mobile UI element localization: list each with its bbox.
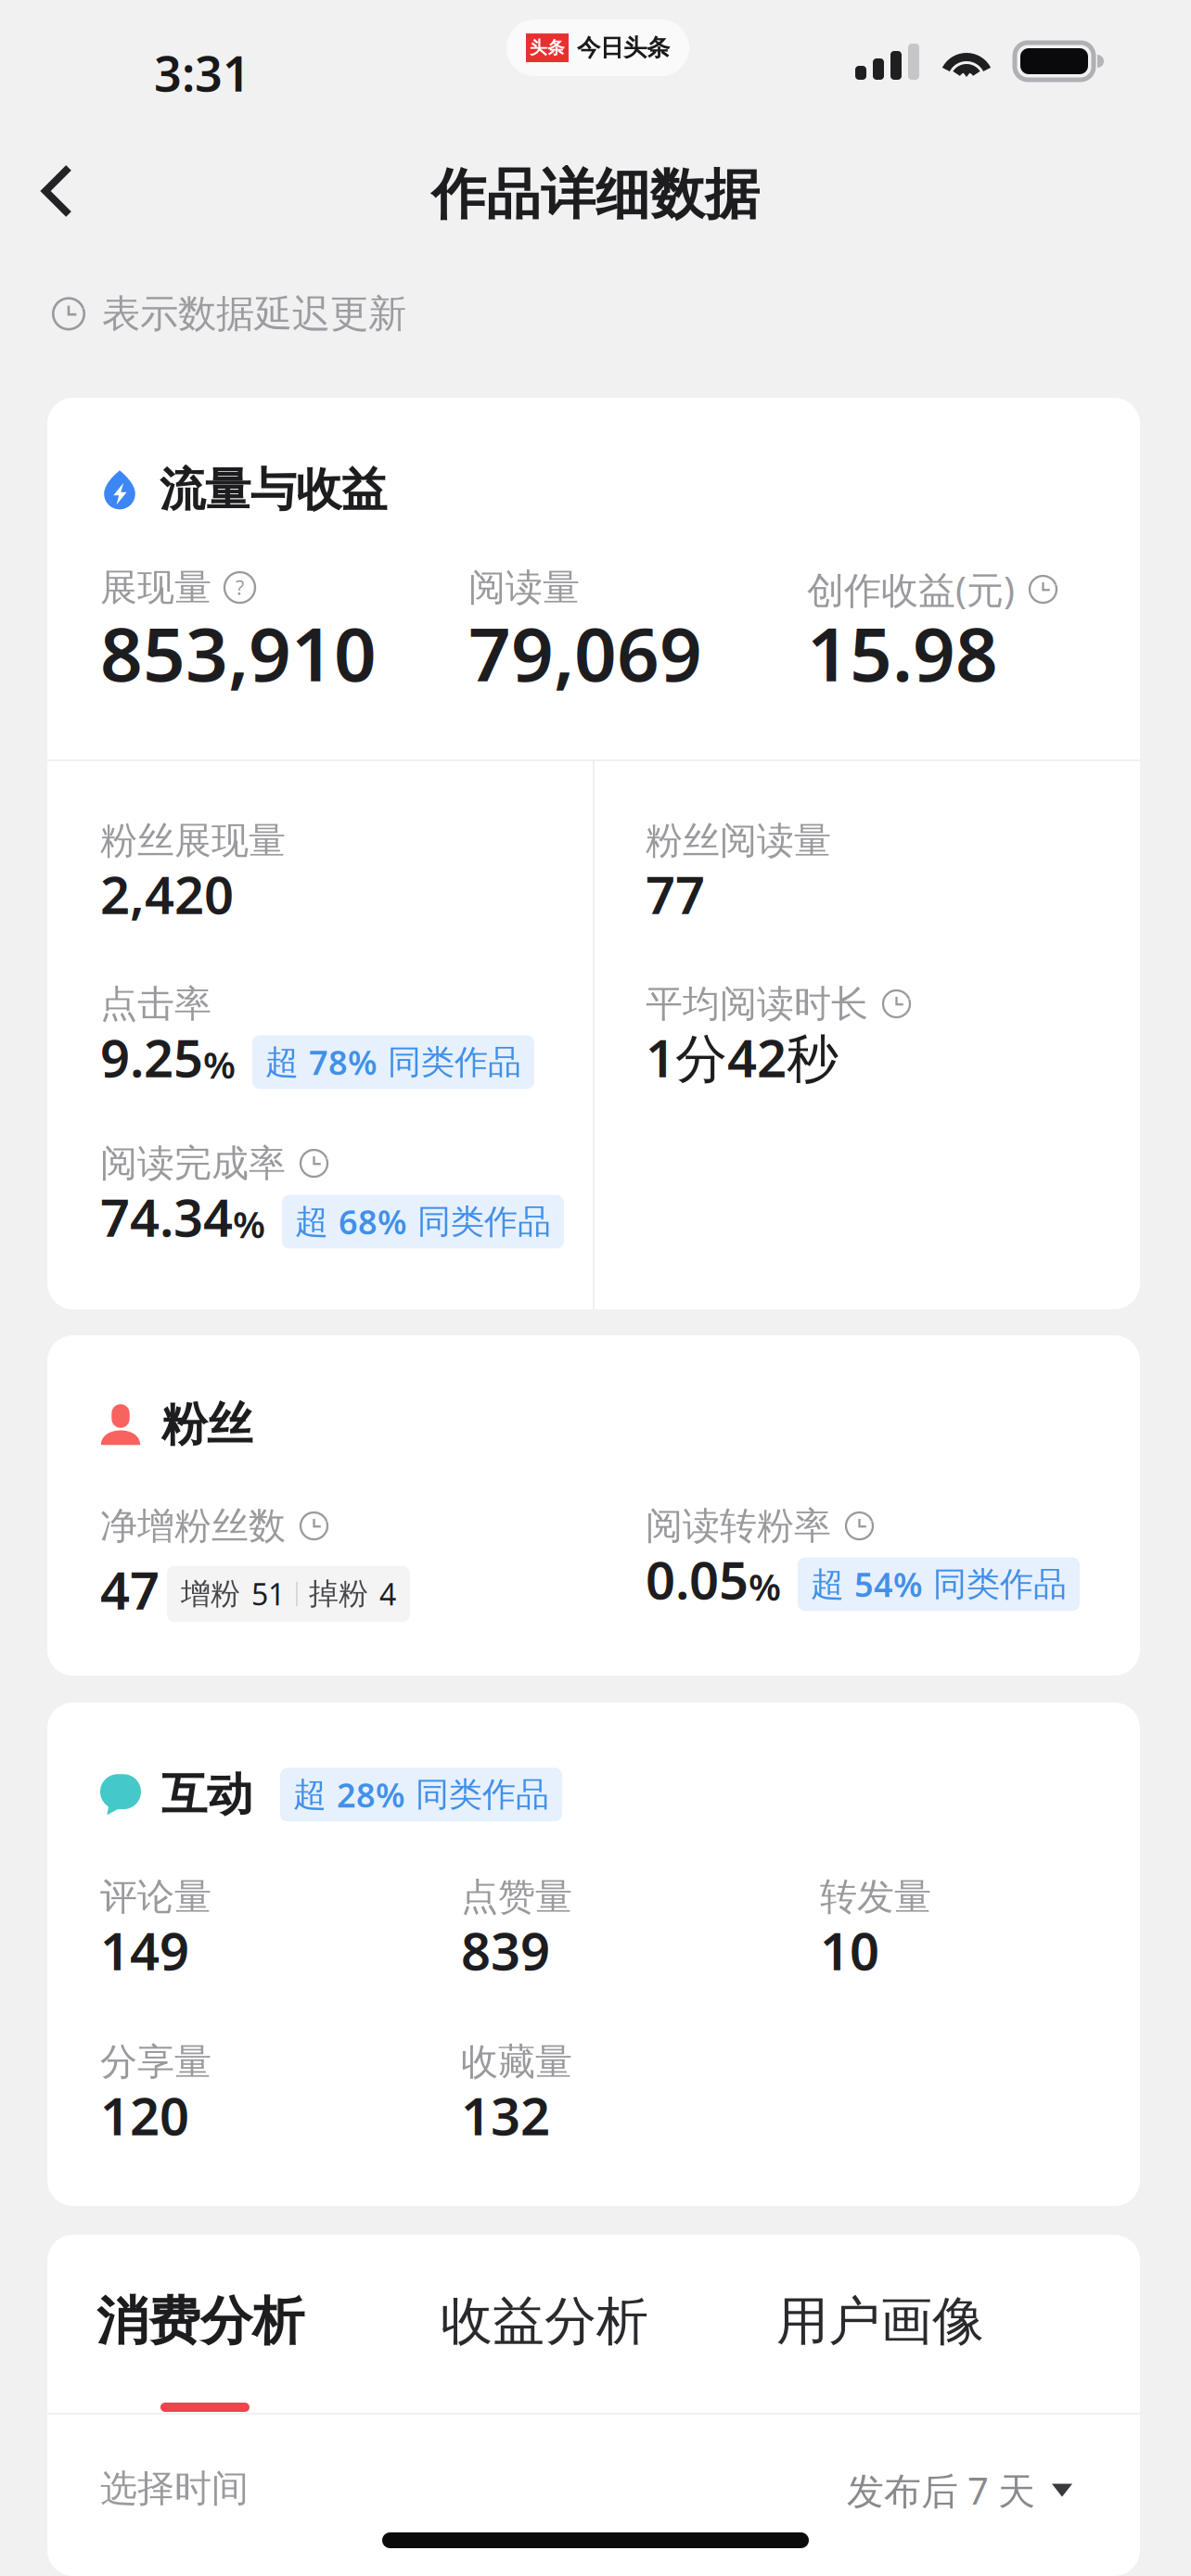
staticText: %: [233, 1199, 265, 1248]
staticText: 收藏量: [461, 2039, 572, 2085]
staticText: 表示数据延迟更新: [102, 290, 406, 337]
button[interactable]: 用户画像: [760, 2265, 1001, 2377]
staticText: 发布后 7 天: [847, 2466, 1035, 2515]
button[interactable]: Back: [17, 138, 98, 244]
staticText: 作品详细数据: [431, 161, 760, 228]
staticText: 132: [461, 2081, 550, 2150]
staticText: 用户画像: [776, 2289, 984, 2353]
staticText: 分享量: [100, 2039, 211, 2085]
staticText: 79,069: [468, 603, 702, 702]
staticText: 流量与收益: [160, 462, 387, 518]
staticText: 超: [265, 1042, 309, 1083]
staticText: 阅读量: [468, 565, 580, 610]
staticText: 28%: [337, 1772, 405, 1817]
staticText: 转发量: [820, 1874, 931, 1920]
staticText: 同类作品: [378, 1042, 521, 1083]
staticText: 增粉: [181, 1576, 240, 1612]
staticText: 评论量: [100, 1874, 211, 1920]
staticText: 平均阅读时长: [646, 981, 868, 1027]
staticText: 今日头条: [577, 33, 670, 62]
staticText: 853,910: [100, 603, 377, 702]
staticText: 4: [379, 1574, 396, 1614]
staticText: 78%: [309, 1040, 378, 1084]
button[interactable]: 发布后 7 天: [847, 2466, 1072, 2515]
staticText: 51: [251, 1574, 285, 1614]
staticText: 阅读转粉率: [646, 1503, 831, 1549]
staticText: 15.98: [807, 603, 998, 702]
staticText: 粉丝: [161, 1396, 252, 1453]
button[interactable]: 收益分析: [424, 2265, 665, 2377]
staticText: 10: [820, 1916, 879, 1985]
staticText: 消费分析: [96, 2289, 304, 2353]
staticText: 2,420: [100, 860, 234, 928]
staticText: 粉丝展现量: [100, 818, 286, 863]
staticText: 3:31: [154, 41, 250, 105]
staticText: 创作收益(元): [807, 565, 1015, 614]
staticText: 掉粉: [309, 1576, 368, 1612]
staticText: 互动: [161, 1766, 252, 1823]
staticText: 同类作品: [407, 1201, 551, 1242]
staticText: 超: [295, 1201, 339, 1242]
staticText: 超: [811, 1564, 854, 1605]
staticText: 同类作品: [405, 1774, 549, 1815]
staticText: 74.34: [100, 1182, 233, 1251]
staticText: 展现量: [100, 565, 211, 610]
staticText: 点赞量: [461, 1874, 572, 1920]
staticText: 54%: [854, 1562, 923, 1606]
staticText: 阅读完成率: [100, 1141, 286, 1186]
staticText: 68%: [339, 1199, 407, 1244]
staticText: %: [749, 1562, 781, 1611]
staticText: 头条: [530, 37, 565, 58]
staticText: 47: [100, 1555, 160, 1624]
staticText: %: [203, 1040, 236, 1089]
staticText: 点击率: [100, 981, 211, 1027]
button[interactable]: 消费分析: [80, 2265, 321, 2377]
staticText: 1分42秒: [646, 1023, 839, 1092]
staticText: 粉丝阅读量: [646, 818, 831, 863]
staticText: 超: [293, 1774, 337, 1815]
staticText: 选择时间: [100, 2466, 249, 2511]
staticText: ?: [236, 574, 244, 601]
staticText: 收益分析: [441, 2289, 648, 2353]
staticText: 120: [100, 2081, 189, 2150]
staticText: 9.25: [100, 1023, 203, 1092]
staticText: 0.05: [646, 1545, 749, 1614]
staticText: 77: [646, 860, 705, 928]
staticText: 149: [100, 1916, 189, 1985]
staticText: 净增粉丝数: [100, 1503, 286, 1549]
staticText: 同类作品: [923, 1564, 1067, 1605]
staticText: 839: [461, 1916, 550, 1985]
